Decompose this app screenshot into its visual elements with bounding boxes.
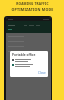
staticText: ROAMING TRAFFIC: [16, 2, 49, 6]
staticText: Portable office: [12, 53, 36, 57]
staticText: Close: [38, 71, 46, 75]
staticText: OPTIMIZATION MODE: [11, 7, 54, 12]
button[interactable]: Close: [38, 71, 46, 75]
